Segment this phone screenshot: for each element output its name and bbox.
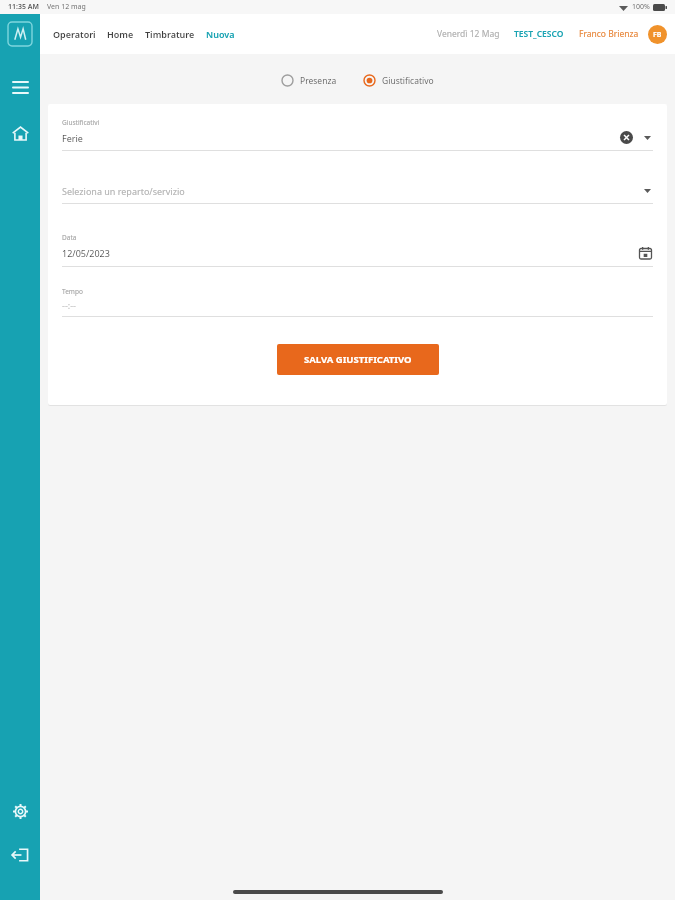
button[interactable]: Clear bbox=[619, 130, 634, 145]
staticText: Tempo bbox=[62, 287, 83, 296]
staticText: --:-- bbox=[62, 299, 77, 311]
button[interactable]: SALVA GIUSTIFICATIVO bbox=[277, 344, 439, 375]
staticText: FB bbox=[653, 30, 662, 40]
button[interactable]: Logo bbox=[6, 20, 34, 48]
staticText: Giustificativo bbox=[382, 75, 434, 87]
staticText: Ven 12 mag bbox=[47, 2, 86, 12]
button[interactable]: Menu bbox=[5, 72, 35, 102]
staticText: Home bbox=[107, 28, 134, 40]
button[interactable]: Seleziona un reparto/servizio bbox=[62, 185, 653, 204]
button[interactable]: Settings bbox=[5, 796, 35, 826]
staticText: Operatori bbox=[53, 28, 96, 40]
button[interactable]: Account bbox=[648, 25, 667, 44]
button[interactable]: Presenza bbox=[279, 71, 339, 90]
staticText: Timbrature bbox=[145, 28, 195, 40]
staticText: SALVA GIUSTIFICATIVO bbox=[304, 353, 412, 366]
button[interactable]: Home bbox=[5, 118, 35, 148]
button[interactable]: Logout bbox=[5, 840, 35, 870]
staticText: 11:35 AM bbox=[8, 2, 39, 12]
button[interactable]: Timbrature bbox=[144, 24, 196, 44]
button[interactable]: TEST_CESCO bbox=[513, 24, 565, 44]
staticText: Venerdì 12 Mag bbox=[437, 28, 500, 40]
staticText: Franco Brienza bbox=[579, 28, 639, 40]
button[interactable]: Open dropdown bbox=[641, 185, 653, 197]
button[interactable]: Operatori bbox=[52, 24, 97, 44]
staticText: Ferie bbox=[62, 132, 83, 144]
staticText: Presenza bbox=[300, 75, 337, 87]
button[interactable]: Home bbox=[106, 24, 135, 44]
button[interactable]: Tempo bbox=[62, 287, 653, 317]
button[interactable]: Giustificativi bbox=[62, 118, 653, 151]
button[interactable]: Data bbox=[62, 233, 653, 267]
button[interactable]: Nuova bbox=[205, 24, 236, 44]
staticText: 100% bbox=[632, 2, 650, 12]
staticText: Seleziona un reparto/servizio bbox=[62, 185, 185, 197]
button[interactable]: Franco Brienza bbox=[578, 24, 640, 44]
staticText: Data bbox=[62, 233, 77, 242]
button[interactable]: Open dropdown bbox=[641, 132, 653, 144]
button[interactable]: Giustificativo bbox=[361, 71, 436, 90]
staticText: 12/05/2023 bbox=[62, 247, 110, 259]
staticText: Nuova bbox=[206, 28, 235, 40]
button[interactable]: Pick date bbox=[637, 245, 653, 261]
staticText: Giustificativi bbox=[62, 118, 100, 127]
staticText: TEST_CESCO bbox=[514, 28, 564, 40]
